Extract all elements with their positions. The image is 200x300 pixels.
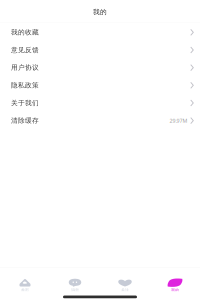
button[interactable]: 消息 (50, 278, 100, 291)
button[interactable]: 清除缓存 (0, 112, 200, 129)
staticText: 29.97M (169, 117, 187, 124)
staticText: 关注 (121, 288, 129, 293)
button[interactable]: 首页 (0, 278, 50, 291)
staticText: 我的 (93, 8, 107, 16)
staticText: 隐私政策 (11, 81, 39, 89)
button[interactable]: 我的收藏 (0, 23, 200, 41)
button[interactable]: 关于我们 (0, 94, 200, 112)
staticText: 关于我们 (11, 99, 39, 107)
staticText: 消息 (71, 288, 79, 293)
button[interactable]: 关注 (100, 278, 150, 291)
staticText: 我的收藏 (11, 28, 39, 36)
staticText: 用户协议 (11, 64, 39, 72)
button[interactable]: 意见反馈 (0, 41, 200, 59)
button[interactable]: 用户协议 (0, 59, 200, 76)
button[interactable]: 我的 (150, 278, 200, 291)
staticText: 首页 (21, 288, 29, 293)
staticText: 我的 (171, 288, 179, 293)
button[interactable]: 隐私政策 (0, 76, 200, 94)
staticText: 清除缓存 (11, 116, 39, 125)
staticText: 意见反馈 (11, 46, 39, 54)
